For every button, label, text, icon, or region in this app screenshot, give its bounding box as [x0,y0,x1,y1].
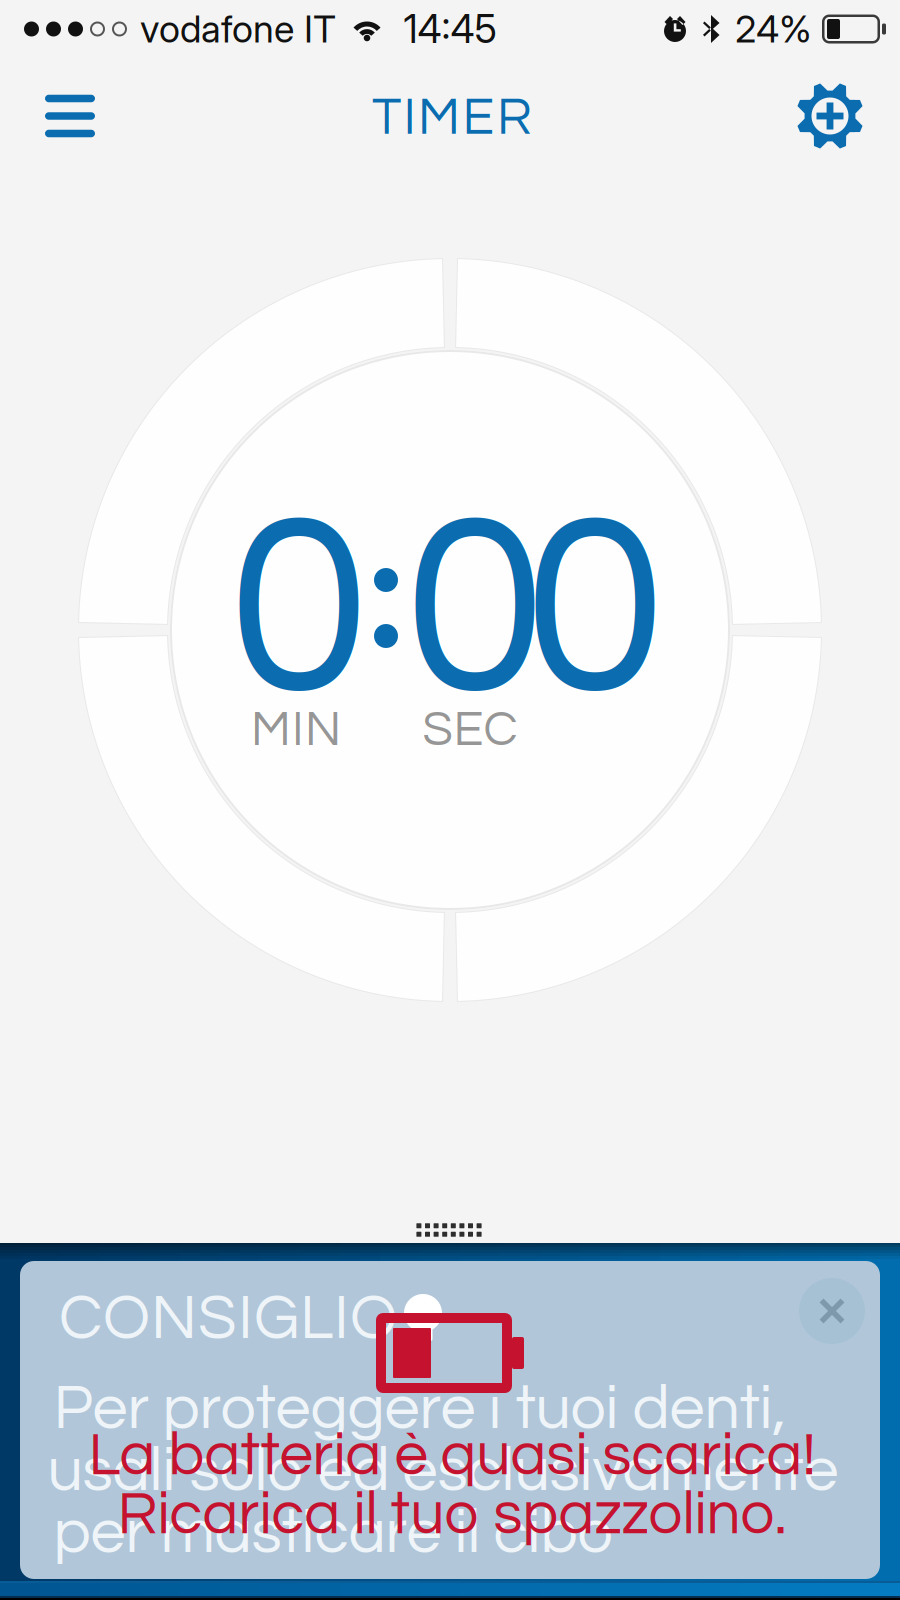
staticText: usali solo ed esclusivamente [47,1439,838,1503]
staticText: vodafone IT [140,6,336,52]
button[interactable]: Add timer [780,66,880,166]
staticText: Ricarica il tuo spazzolino. [117,1484,786,1546]
staticText: 0 [404,479,545,743]
button[interactable]: Menu [20,66,120,166]
button[interactable]: Close [787,1266,877,1356]
staticText: SEC [422,705,517,755]
staticText: CONSIGLIO [59,1287,397,1351]
staticText: per masticare il cibo [53,1501,612,1565]
staticText: 14:45 [403,6,496,52]
staticText: 0 [524,479,665,743]
staticText: Per proteggere i tuoi denti, [53,1377,786,1441]
staticText: 24% [735,6,812,52]
staticText: 0 [228,479,369,743]
staticText: TIMER [372,91,532,145]
staticText: La batteria è quasi scarica! [88,1425,815,1487]
staticText: MIN [251,705,341,755]
